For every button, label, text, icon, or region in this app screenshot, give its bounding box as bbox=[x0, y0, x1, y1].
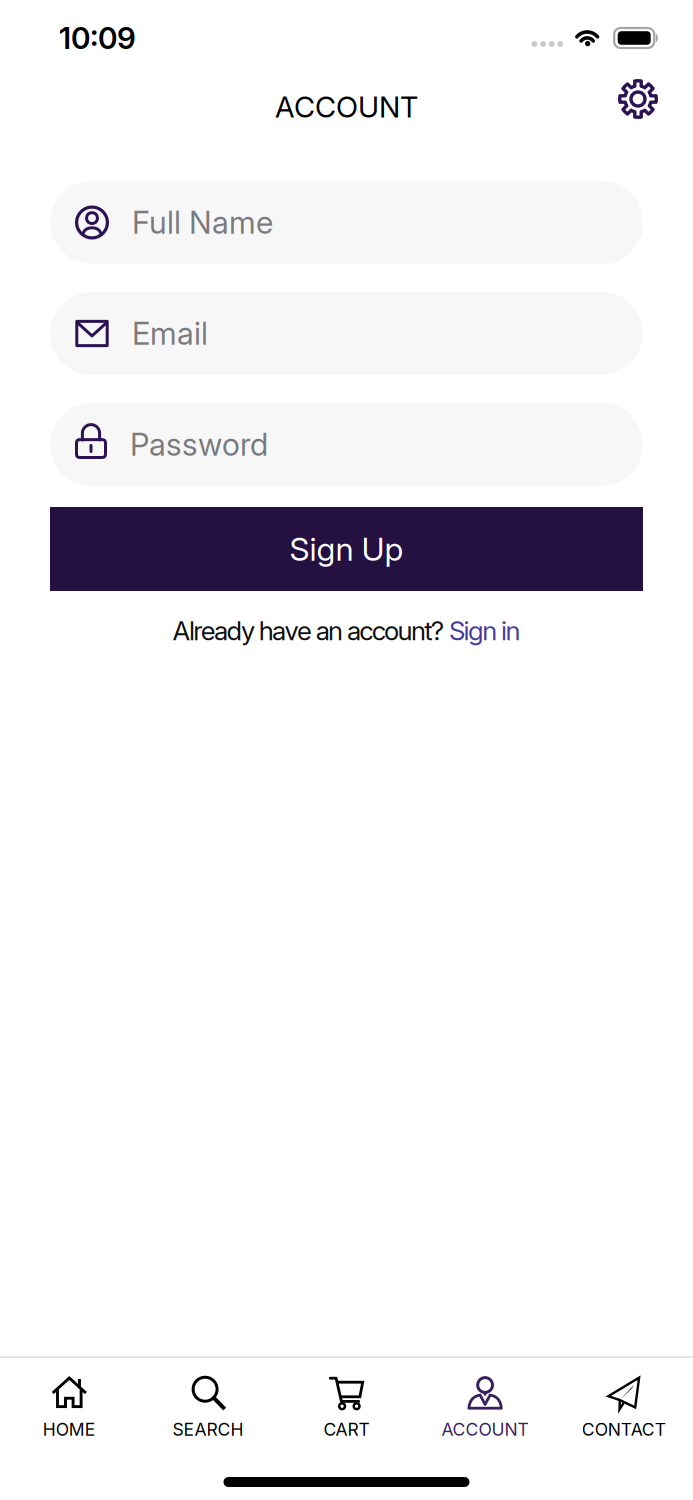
staticText: Sign Up bbox=[289, 530, 403, 568]
button[interactable]: HOME bbox=[0, 1375, 139, 1440]
button[interactable]: Sign Up bbox=[50, 507, 643, 591]
button[interactable]: ACCOUNT bbox=[416, 1375, 554, 1440]
staticText: Password bbox=[130, 426, 268, 463]
staticText: ACCOUNT bbox=[442, 1419, 529, 1440]
staticText: ACCOUNT bbox=[275, 89, 418, 125]
staticText: CONTACT bbox=[582, 1419, 666, 1440]
button[interactable]: Full Name bbox=[50, 181, 643, 264]
button[interactable]: Password bbox=[50, 403, 643, 486]
button[interactable]: CART bbox=[277, 1375, 416, 1440]
staticText: Sign in bbox=[449, 615, 520, 646]
button[interactable]: Settings bbox=[618, 79, 658, 119]
button[interactable]: Sign in bbox=[449, 615, 520, 646]
button[interactable]: CONTACT bbox=[554, 1375, 693, 1440]
button[interactable]: Email bbox=[50, 292, 643, 375]
staticText: CART bbox=[323, 1419, 369, 1440]
staticText: HOME bbox=[43, 1419, 96, 1440]
staticText: 10:09 bbox=[59, 20, 136, 56]
staticText: SEARCH bbox=[172, 1419, 243, 1440]
staticText: Email bbox=[132, 315, 208, 352]
staticText: Already have an account? bbox=[172, 615, 449, 646]
staticText: Full Name bbox=[132, 204, 273, 241]
button[interactable]: SEARCH bbox=[139, 1375, 277, 1440]
